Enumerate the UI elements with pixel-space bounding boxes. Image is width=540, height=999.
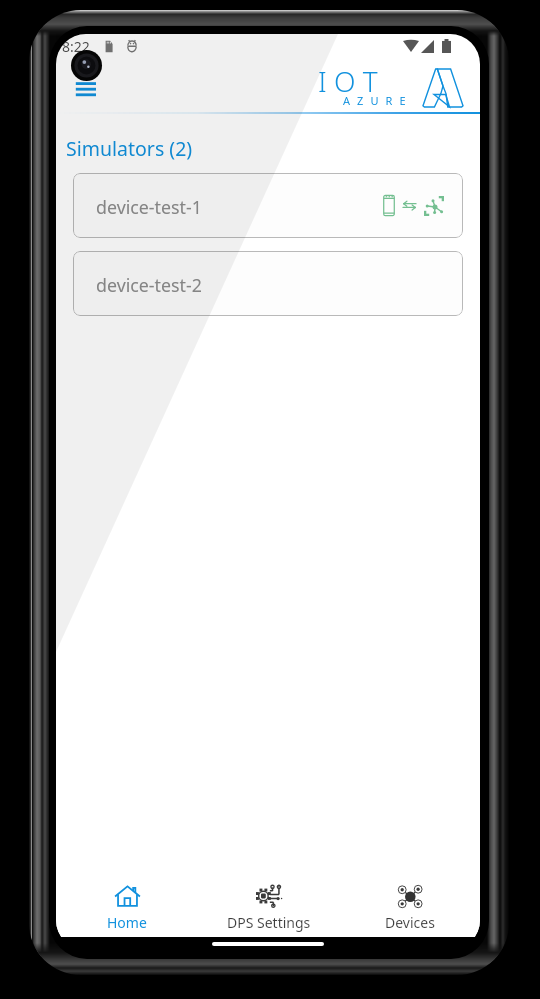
button[interactable]: Open navigation menu	[72, 82, 98, 102]
staticText: I O T	[318, 62, 378, 100]
staticText: Devices	[385, 913, 435, 932]
staticText: Home	[107, 913, 147, 932]
staticText: device-test-2	[96, 273, 202, 297]
button[interactable]: device-test-1	[73, 173, 463, 238]
button[interactable]: device-test-2	[73, 251, 463, 316]
staticText: Simulators (2)	[66, 135, 193, 162]
button[interactable]: DPS Settings	[198, 873, 339, 937]
button[interactable]: Home	[56, 873, 198, 937]
staticText: A Z U R E	[343, 93, 408, 108]
staticText: DPS Settings	[227, 913, 311, 932]
button[interactable]: Devices	[339, 873, 480, 937]
staticText: 8:22	[62, 37, 90, 56]
staticText: device-test-1	[96, 195, 202, 219]
